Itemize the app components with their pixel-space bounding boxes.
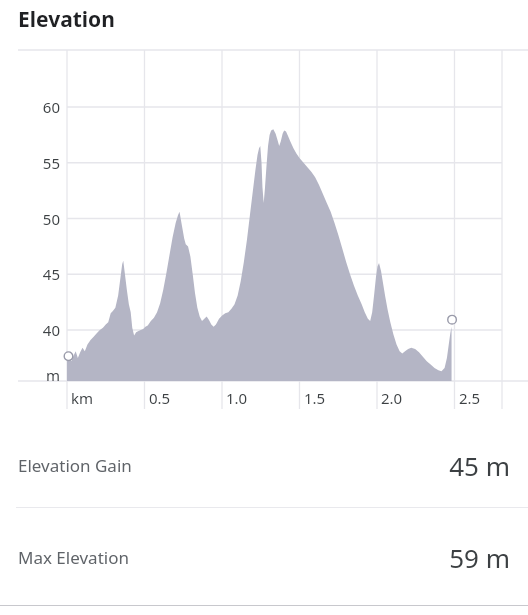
staticText: 45 bbox=[34, 264, 60, 284]
staticText: 2.0 bbox=[381, 388, 403, 408]
button[interactable]: Elevation Gain bbox=[0, 424, 528, 507]
staticText: 1.0 bbox=[226, 388, 248, 408]
staticText: Elevation bbox=[18, 5, 115, 34]
staticText: 45 m bbox=[449, 448, 510, 483]
button[interactable]: Max Elevation bbox=[0, 509, 528, 605]
staticText: 50 bbox=[34, 209, 60, 229]
staticText: Max Elevation bbox=[18, 546, 129, 569]
staticText: 40 bbox=[34, 320, 60, 340]
staticText: km bbox=[71, 388, 94, 408]
staticText: 60 bbox=[34, 97, 60, 117]
staticText: 2.5 bbox=[459, 388, 481, 408]
staticText: 59 m bbox=[449, 540, 510, 575]
staticText: Elevation Gain bbox=[18, 454, 132, 477]
staticText: 55 bbox=[34, 153, 60, 173]
staticText: m bbox=[34, 365, 60, 385]
staticText: 0.5 bbox=[149, 388, 171, 408]
staticText: 1.5 bbox=[304, 388, 326, 408]
